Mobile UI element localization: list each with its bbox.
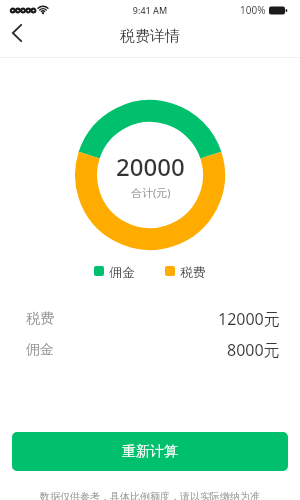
staticText: 重新计算 — [122, 443, 178, 461]
staticText: 税费 — [26, 310, 54, 328]
staticText: 20000 — [116, 150, 185, 183]
button[interactable]: 重新计算 — [12, 432, 288, 471]
staticText: 100% — [240, 3, 266, 17]
staticText: 8000元 — [227, 339, 280, 361]
staticText: 税费 — [180, 264, 206, 278]
staticText: 佣金 — [109, 264, 135, 278]
staticText: 佣金 — [26, 341, 54, 359]
staticText: 数据仅供参考，具体比例额度，请以实际缴纳为准 — [0, 490, 300, 500]
staticText: 9:41 AM — [0, 4, 300, 16]
staticText: 税费详情 — [0, 27, 300, 46]
staticText: 合计(元) — [131, 185, 171, 200]
staticText: 12000元 — [218, 308, 280, 330]
button[interactable] — [7, 23, 27, 43]
